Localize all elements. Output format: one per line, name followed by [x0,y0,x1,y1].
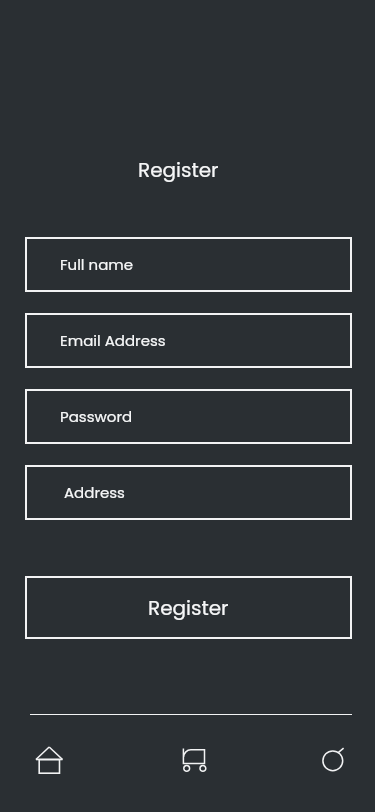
button[interactable] [174,740,214,780]
staticText: Address [64,482,125,503]
staticText: Password [60,406,133,427]
staticText: Email Address [60,330,166,351]
staticText: Register [138,156,219,184]
button[interactable]: Register [25,576,352,639]
button[interactable] [313,741,353,781]
button[interactable]: Email Address [25,313,352,368]
staticText: Register [148,594,229,622]
button[interactable]: Address [25,465,352,520]
button[interactable]: Full name [25,237,352,292]
button[interactable] [29,740,69,780]
button[interactable]: Password [25,389,352,444]
staticText: Full name [60,254,134,275]
